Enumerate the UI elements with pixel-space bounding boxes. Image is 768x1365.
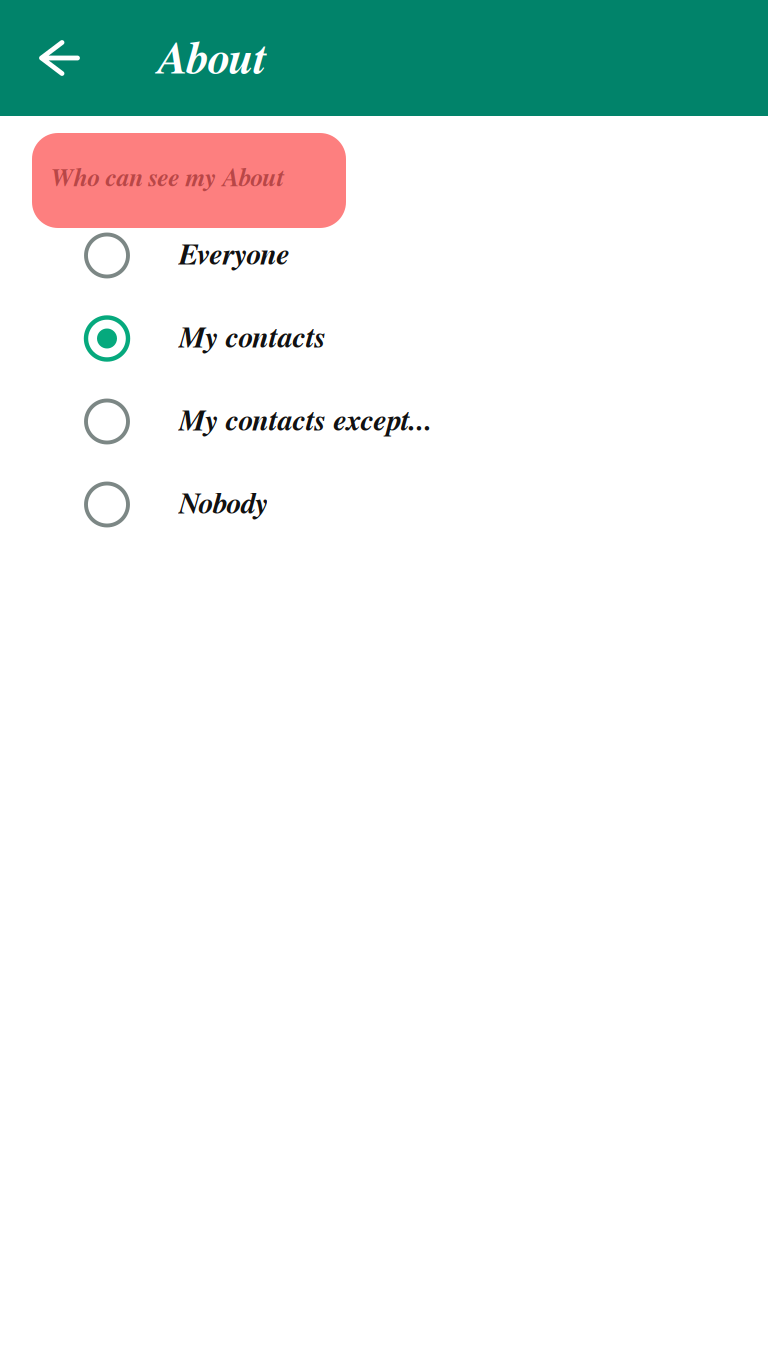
button[interactable]: My contacts [0,297,768,380]
button[interactable]: Back [0,0,99,116]
staticText: Nobody [178,489,267,519]
staticText: Who can see my About [49,166,283,191]
button[interactable]: Nobody [0,463,768,546]
staticText: About [155,37,265,83]
staticText: My contacts [178,323,325,353]
button[interactable]: My contacts except... [0,380,768,463]
staticText: Everyone [178,240,289,270]
button[interactable]: Everyone [0,214,768,297]
staticText: My contacts except... [178,406,433,436]
